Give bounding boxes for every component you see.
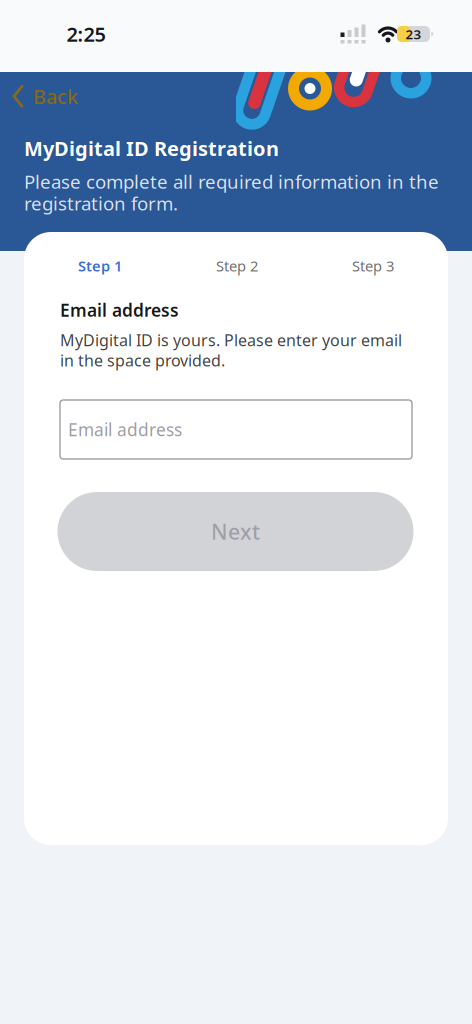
button[interactable]: Email address xyxy=(60,400,412,459)
staticText: MyDigital ID Registration xyxy=(24,135,279,162)
staticText: Email address xyxy=(68,418,182,441)
staticText: MyDigital ID is yours. Please enter your… xyxy=(60,329,402,351)
button[interactable]: Next xyxy=(57,492,413,571)
staticText: Step 1 xyxy=(78,256,122,275)
staticText: 23 xyxy=(405,25,421,43)
staticText: Step 2 xyxy=(216,256,258,275)
staticText: Step 3 xyxy=(352,256,394,275)
staticText: Next xyxy=(211,517,260,546)
button[interactable]: Back xyxy=(12,83,78,110)
staticText: Please complete all required information… xyxy=(24,169,439,194)
staticText: Email address xyxy=(60,298,179,321)
staticText: in the space provided. xyxy=(60,350,225,371)
staticText: Back xyxy=(33,83,78,110)
staticText: registration form. xyxy=(24,191,178,216)
staticText: 2:25 xyxy=(66,21,105,47)
